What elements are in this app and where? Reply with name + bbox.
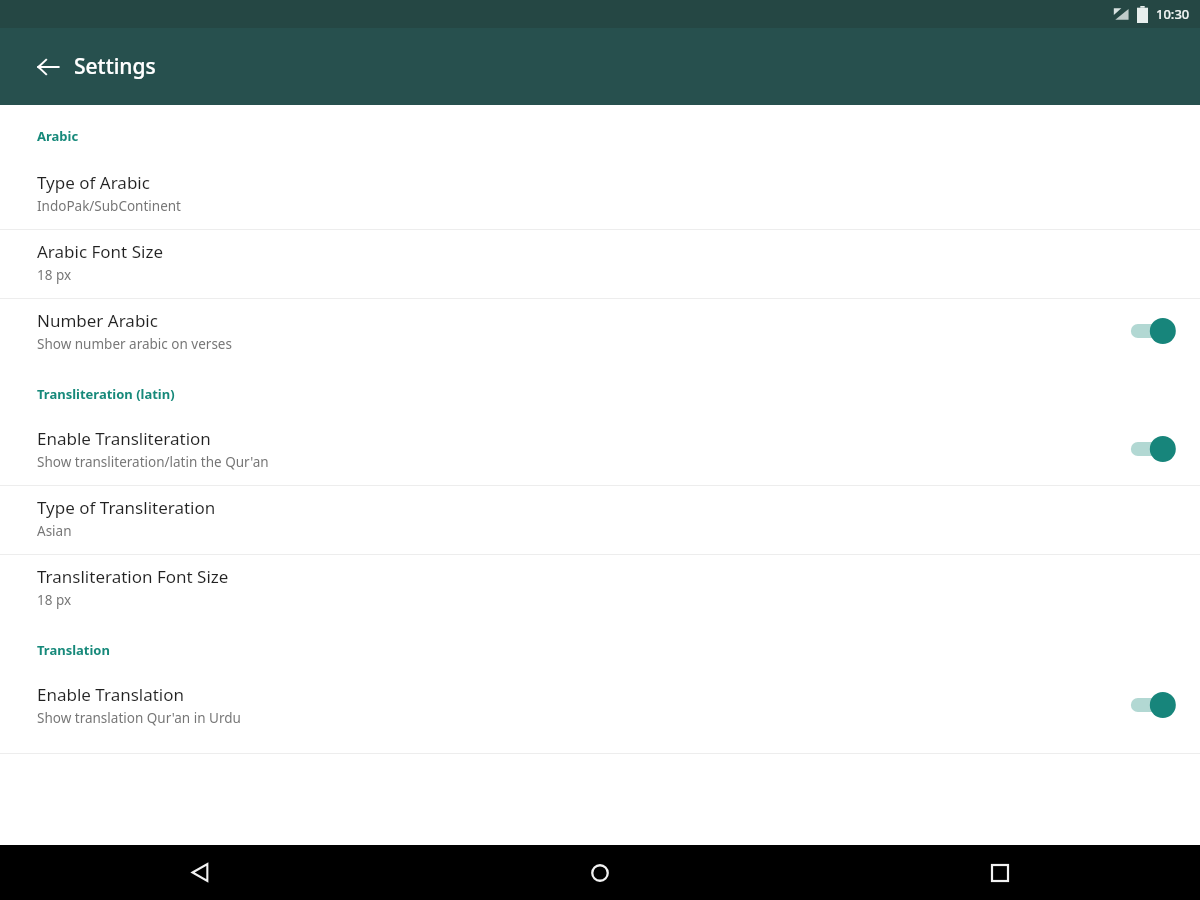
button[interactable]: Recent apps [800,845,1200,900]
staticText: 10:30 [1156,5,1190,23]
staticText: Type of Arabic [37,171,150,194]
staticText: Show transliteration/latin the Qur'an [37,453,269,471]
button[interactable]: Enable Transliteration [0,417,1200,485]
staticText: Arabic [37,127,79,145]
button[interactable]: Enable Translation [0,673,1200,741]
staticText: Arabic Font Size [37,240,163,263]
staticText: Number Arabic [37,309,158,332]
button[interactable]: Transliteration Font Size [0,555,1200,623]
staticText: Show number arabic on verses [37,335,232,353]
staticText: Enable Transliteration [37,427,211,450]
staticText: Settings [74,52,156,81]
button[interactable]: Number Arabic [0,299,1200,367]
staticText: Enable Translation [37,683,185,706]
button[interactable]: Type of Arabic [0,161,1200,229]
staticText: Show translation Qur'an in Urdu [37,709,241,727]
button[interactable]: Toggle setting [1128,315,1176,347]
button[interactable]: Toggle setting [1128,689,1176,721]
staticText: 18 px [37,591,72,609]
staticText: Translation [37,641,110,659]
staticText: Type of Transliteration [37,496,216,519]
staticText: Transliteration (latin) [37,385,175,403]
button[interactable]: Back [24,43,72,91]
button[interactable]: Arabic Font Size [0,230,1200,298]
button[interactable]: Back [0,845,400,900]
staticText: Transliteration Font Size [37,565,229,588]
button[interactable]: Type of Transliteration [0,486,1200,554]
button[interactable]: Home [400,845,800,900]
staticText: IndoPak/SubContinent [37,197,181,215]
staticText: Asian [37,522,72,540]
staticText: 18 px [37,266,72,284]
button[interactable]: Toggle setting [1128,433,1176,465]
